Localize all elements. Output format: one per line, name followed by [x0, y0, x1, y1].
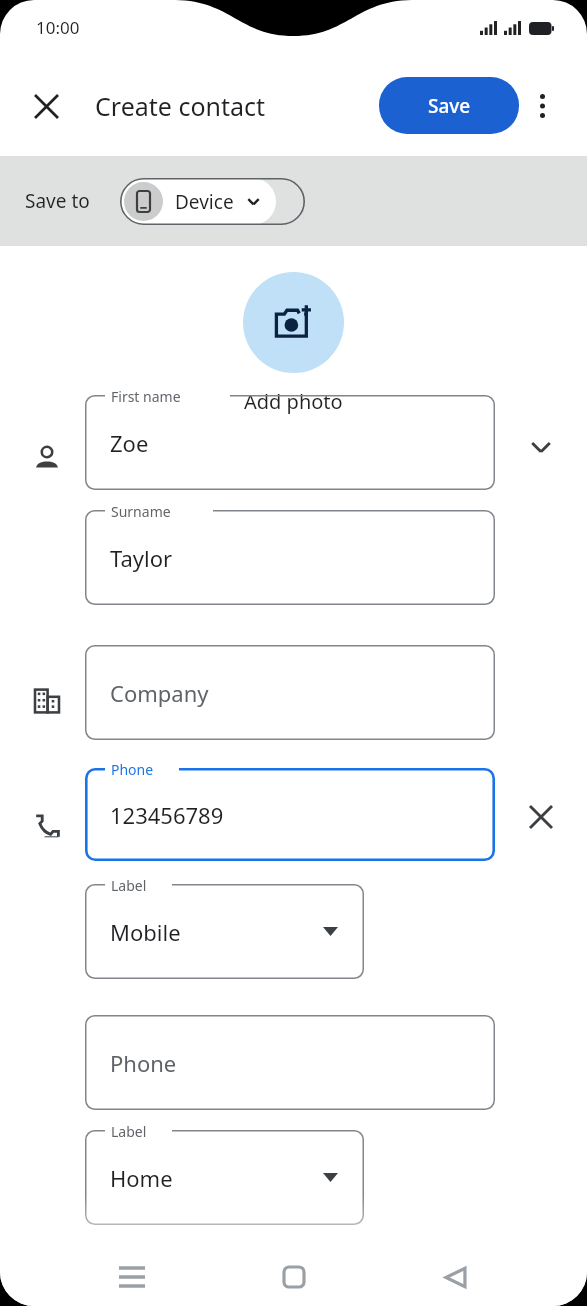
button[interactable]: Add photo — [243, 272, 344, 373]
staticText: Device — [175, 189, 234, 215]
staticText: Create contact — [95, 89, 266, 123]
staticText: Zoe — [110, 428, 149, 458]
button[interactable]: Label — [85, 1130, 364, 1225]
staticText: Home — [110, 1163, 173, 1193]
button[interactable]: Close — [22, 82, 70, 130]
staticText: Phone — [111, 760, 154, 779]
button[interactable]: Phone — [85, 768, 495, 861]
staticText: 123456789 — [110, 800, 224, 830]
button[interactable]: Surname — [85, 510, 495, 605]
button[interactable]: Home — [265, 1248, 323, 1306]
button[interactable]: Back — [426, 1248, 484, 1306]
staticText: Add photo — [244, 388, 343, 415]
button[interactable]: Clear phone — [518, 794, 564, 840]
button[interactable]: Save — [379, 77, 519, 134]
staticText: Label — [111, 1122, 147, 1141]
staticText: Surname — [111, 502, 171, 521]
staticText: Company — [110, 678, 209, 708]
button[interactable]: Device — [120, 178, 276, 225]
staticText: 10:00 — [36, 16, 80, 39]
button[interactable]: Label — [85, 884, 364, 979]
button[interactable]: Recents — [103, 1248, 161, 1306]
staticText: Mobile — [110, 917, 181, 947]
staticText: Save — [428, 93, 471, 119]
staticText: Taylor — [110, 543, 173, 573]
staticText: First name — [111, 387, 181, 406]
staticText: Label — [111, 876, 147, 895]
button[interactable]: Phone — [85, 1015, 495, 1110]
button[interactable]: Company — [85, 645, 495, 740]
staticText: Save to — [25, 188, 90, 214]
button[interactable]: First name — [85, 395, 495, 490]
button[interactable]: Expand name fields — [518, 424, 564, 470]
button[interactable]: More options — [519, 83, 565, 129]
staticText: Phone — [110, 1048, 177, 1078]
